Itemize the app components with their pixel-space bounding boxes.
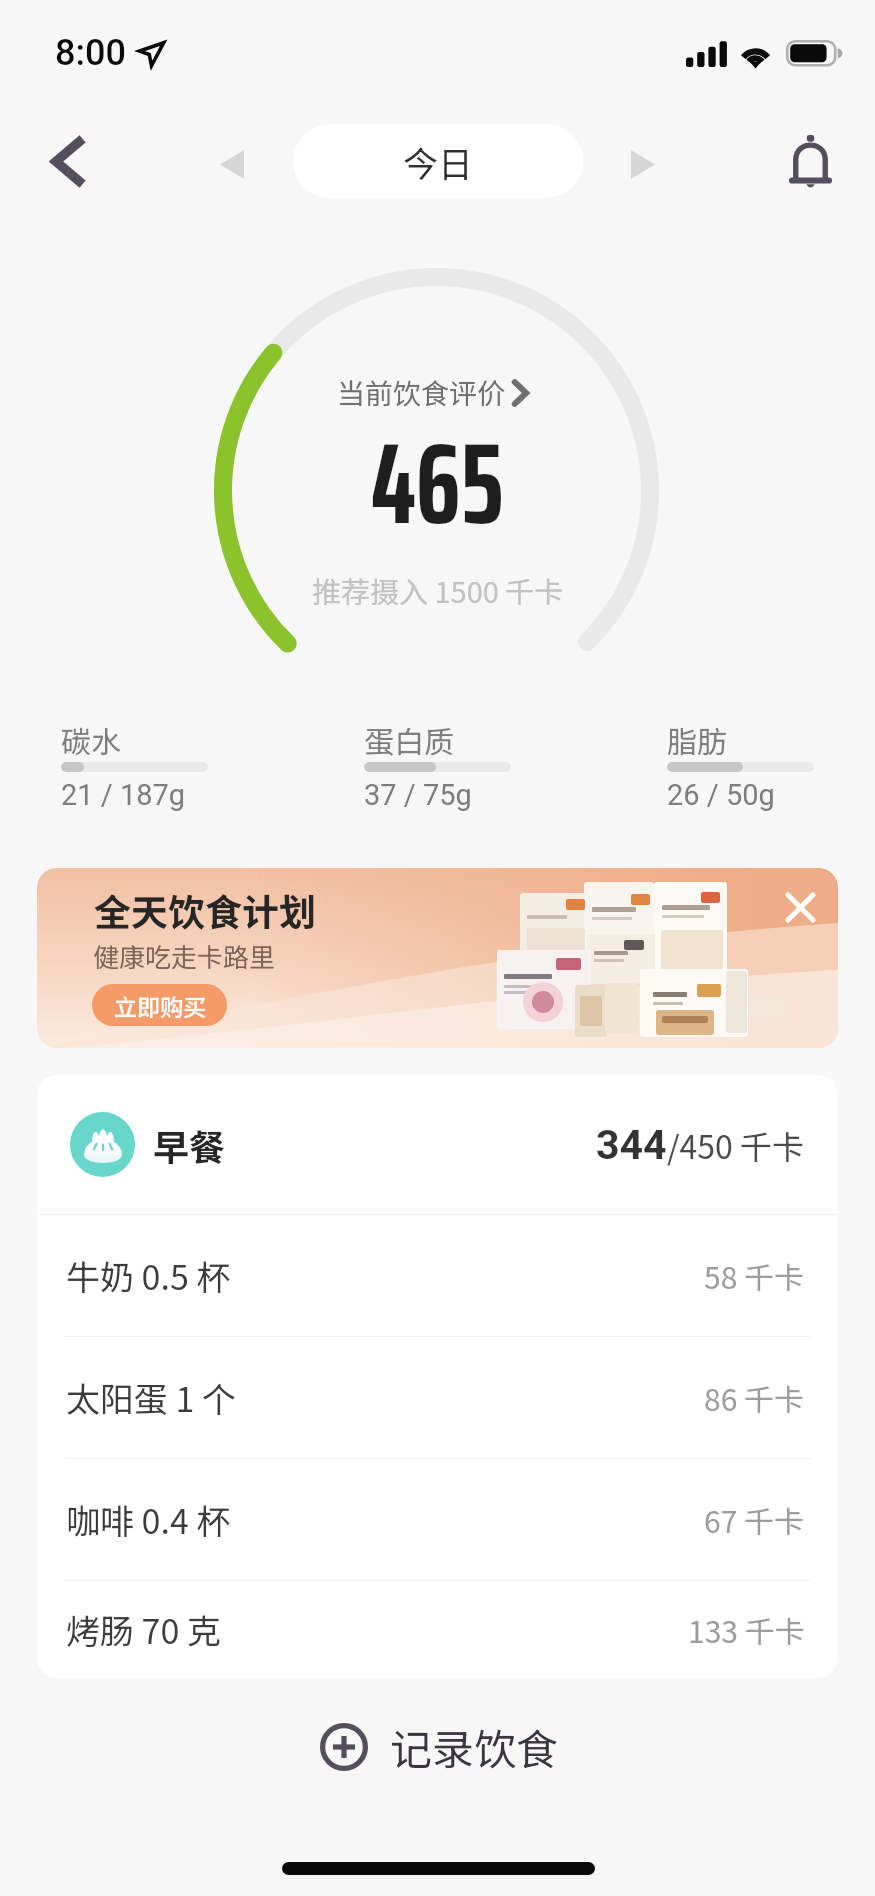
staticText: 健康吃走卡路里 [93, 937, 276, 975]
button[interactable]: Next day [617, 138, 669, 190]
staticText: 记录饮食 [390, 1716, 559, 1777]
staticText: 8:00 [55, 32, 126, 74]
button[interactable]: 牛奶 0.5 杯 [37, 1215, 838, 1336]
staticText: 烤肠 70 克 [66, 1605, 221, 1654]
button[interactable]: 今日 [293, 124, 583, 198]
staticText: 碳水 [61, 718, 121, 761]
button[interactable]: 记录饮食 [320, 1716, 559, 1777]
staticText: /450 千卡 [667, 1122, 804, 1168]
button[interactable]: 全天饮食计划 [37, 868, 838, 1048]
staticText: 465 [371, 394, 504, 573]
staticText: 26 / 50g [667, 778, 775, 812]
button[interactable]: 早餐 [37, 1075, 838, 1214]
button[interactable]: Back [34, 128, 100, 194]
staticText: 牛奶 0.5 杯 [66, 1251, 231, 1300]
button[interactable]: Close [775, 882, 825, 932]
staticText: 37 / 75g [364, 778, 472, 812]
staticText: 脂肪 [667, 718, 727, 761]
staticText: 67 千卡 [704, 1498, 805, 1541]
button[interactable]: Notifications [775, 126, 845, 196]
staticText: 58 千卡 [704, 1254, 805, 1297]
staticText: 全天饮食计划 [94, 883, 316, 937]
staticText: 早餐 [153, 1119, 226, 1171]
staticText: 推荐摄入 1500 千卡 [312, 569, 564, 611]
staticText: 133 千卡 [688, 1608, 805, 1651]
staticText: 86 千卡 [704, 1376, 805, 1419]
staticText: 蛋白质 [364, 718, 454, 761]
button[interactable]: 烤肠 70 克 [37, 1581, 838, 1678]
staticText: 今日 [403, 136, 474, 187]
staticText: 21 / 187g [61, 778, 186, 812]
button[interactable]: 当前饮食评价 [337, 372, 528, 413]
staticText: 太阳蛋 1 个 [66, 1373, 237, 1422]
button[interactable]: Previous day [206, 138, 258, 190]
staticText: 咖啡 0.4 杯 [66, 1495, 231, 1544]
staticText: 当前饮食评价 [337, 372, 506, 413]
staticText: 344 [596, 1121, 667, 1169]
button[interactable]: 立即购买 [92, 984, 227, 1026]
staticText: 立即购买 [114, 989, 206, 1022]
button[interactable]: 太阳蛋 1 个 [37, 1337, 838, 1458]
button[interactable]: 咖啡 0.4 杯 [37, 1459, 838, 1580]
